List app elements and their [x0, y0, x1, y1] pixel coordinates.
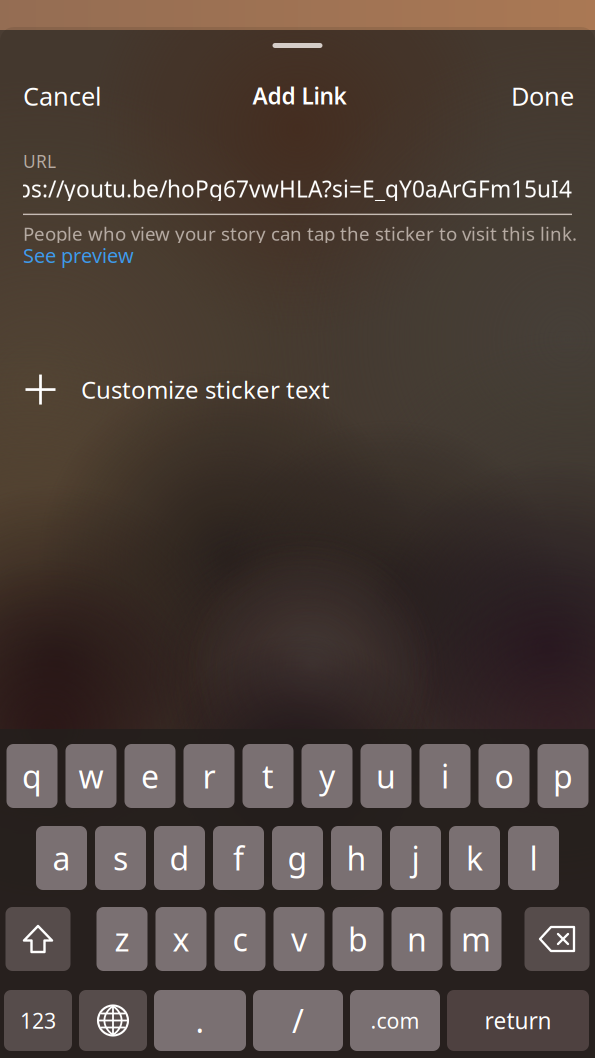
staticText: People who view your story can tap the s… — [23, 221, 577, 246]
staticText: e — [141, 755, 159, 797]
staticText: Add Link — [252, 81, 346, 111]
button[interactable]: k — [449, 826, 500, 890]
staticText: . — [195, 999, 204, 1042]
staticText: u — [376, 755, 396, 797]
staticText: .com — [370, 1006, 419, 1035]
staticText: b — [348, 918, 368, 960]
button[interactable]: Customize sticker text — [0, 364, 595, 415]
staticText: / — [292, 999, 304, 1042]
button[interactable]: m — [450, 907, 501, 971]
button[interactable]: t — [242, 744, 293, 808]
button[interactable]: c — [214, 907, 265, 971]
staticText: 123 — [20, 1006, 56, 1035]
staticText: q — [22, 755, 42, 797]
staticText: Done — [511, 79, 574, 113]
button[interactable]: w — [65, 744, 116, 808]
button[interactable]: Cancel — [23, 74, 102, 118]
button[interactable]: Next keyboard — [79, 990, 147, 1051]
staticText: h — [346, 837, 366, 879]
button[interactable]: / — [253, 990, 343, 1051]
button[interactable]: return — [447, 990, 589, 1051]
button[interactable]: 123 — [4, 990, 72, 1051]
staticText: g — [287, 837, 307, 879]
staticText: return — [484, 1005, 551, 1035]
button[interactable]: a — [36, 826, 87, 890]
button[interactable]: s — [95, 826, 146, 890]
button[interactable]: i — [419, 744, 470, 808]
staticText: p — [553, 755, 573, 797]
button[interactable]: . — [154, 990, 246, 1051]
button[interactable]: x — [155, 907, 206, 971]
staticText: w — [78, 755, 103, 797]
staticText: t — [262, 755, 274, 797]
button[interactable]: d — [154, 826, 205, 890]
staticText: k — [466, 837, 483, 879]
staticText: v — [291, 918, 307, 960]
button[interactable]: h — [331, 826, 382, 890]
button[interactable]: o — [478, 744, 529, 808]
button[interactable]: n — [391, 907, 442, 971]
button[interactable]: Delete — [524, 907, 589, 971]
staticText: o — [494, 755, 513, 797]
staticText: c — [232, 918, 247, 960]
staticText: See preview — [23, 242, 134, 269]
button[interactable]: p — [537, 744, 588, 808]
staticText: x — [172, 918, 189, 960]
button[interactable]: v — [273, 907, 324, 971]
button[interactable]: Done — [511, 74, 574, 118]
button[interactable]: Shift — [5, 907, 70, 971]
button[interactable]: j — [390, 826, 441, 890]
button[interactable]: r — [183, 744, 234, 808]
button[interactable]: e — [124, 744, 175, 808]
button[interactable]: f — [213, 826, 264, 890]
button[interactable]: y — [301, 744, 352, 808]
staticText: URL — [23, 150, 56, 173]
button[interactable]: q — [6, 744, 57, 808]
staticText: i — [441, 755, 449, 797]
button[interactable]: See preview — [23, 242, 134, 269]
button[interactable]: g — [272, 826, 323, 890]
staticText: https://youtu.be/hoPg67vwHLA?si=E_qY0aAr… — [0, 174, 572, 204]
button[interactable]: l — [508, 826, 559, 890]
staticText: r — [202, 755, 215, 797]
staticText: Customize sticker text — [81, 374, 330, 405]
button[interactable]: b — [332, 907, 383, 971]
staticText: d — [169, 837, 189, 879]
staticText: l — [529, 837, 537, 879]
staticText: n — [407, 918, 427, 960]
button[interactable]: .com — [350, 990, 440, 1051]
staticText: m — [461, 918, 491, 960]
staticText: s — [113, 837, 128, 879]
staticText: f — [233, 837, 244, 879]
staticText: z — [114, 918, 129, 960]
staticText: j — [411, 837, 419, 879]
staticText: y — [319, 755, 335, 797]
staticText: Cancel — [23, 79, 102, 113]
staticText: a — [52, 837, 70, 879]
button[interactable]: z — [96, 907, 147, 971]
button[interactable]: u — [360, 744, 411, 808]
